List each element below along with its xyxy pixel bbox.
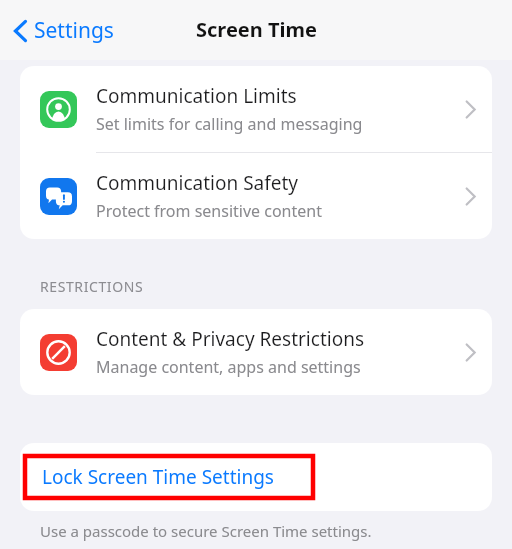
button[interactable]: Lock Screen Time Settings	[20, 443, 492, 511]
staticText: Protect from sensitive content	[96, 200, 322, 222]
staticText: Manage content, apps and settings	[96, 356, 361, 378]
staticText: Communication Limits	[96, 83, 297, 109]
staticText: RESTRICTIONS	[40, 277, 144, 296]
staticText: Settings	[34, 16, 114, 45]
staticText: Use a passcode to secure Screen Time set…	[40, 521, 372, 541]
staticText: Communication Safety	[96, 170, 299, 196]
staticText: Lock Screen Time Settings	[42, 464, 274, 490]
staticText: Set limits for calling and messaging	[96, 113, 363, 135]
button[interactable]: Content & Privacy Restrictions	[20, 309, 492, 395]
staticText: Content & Privacy Restrictions	[96, 326, 364, 352]
staticText: Screen Time	[196, 16, 317, 43]
button[interactable]: Communication Limits	[20, 66, 492, 152]
button[interactable]: Settings	[10, 12, 118, 49]
button[interactable]: Communication Safety	[20, 153, 492, 239]
